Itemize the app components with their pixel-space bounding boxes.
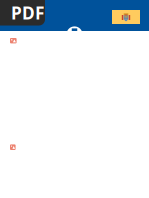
button[interactable]: PDF (0, 0, 45, 25)
staticText: PDF (11, 1, 45, 24)
